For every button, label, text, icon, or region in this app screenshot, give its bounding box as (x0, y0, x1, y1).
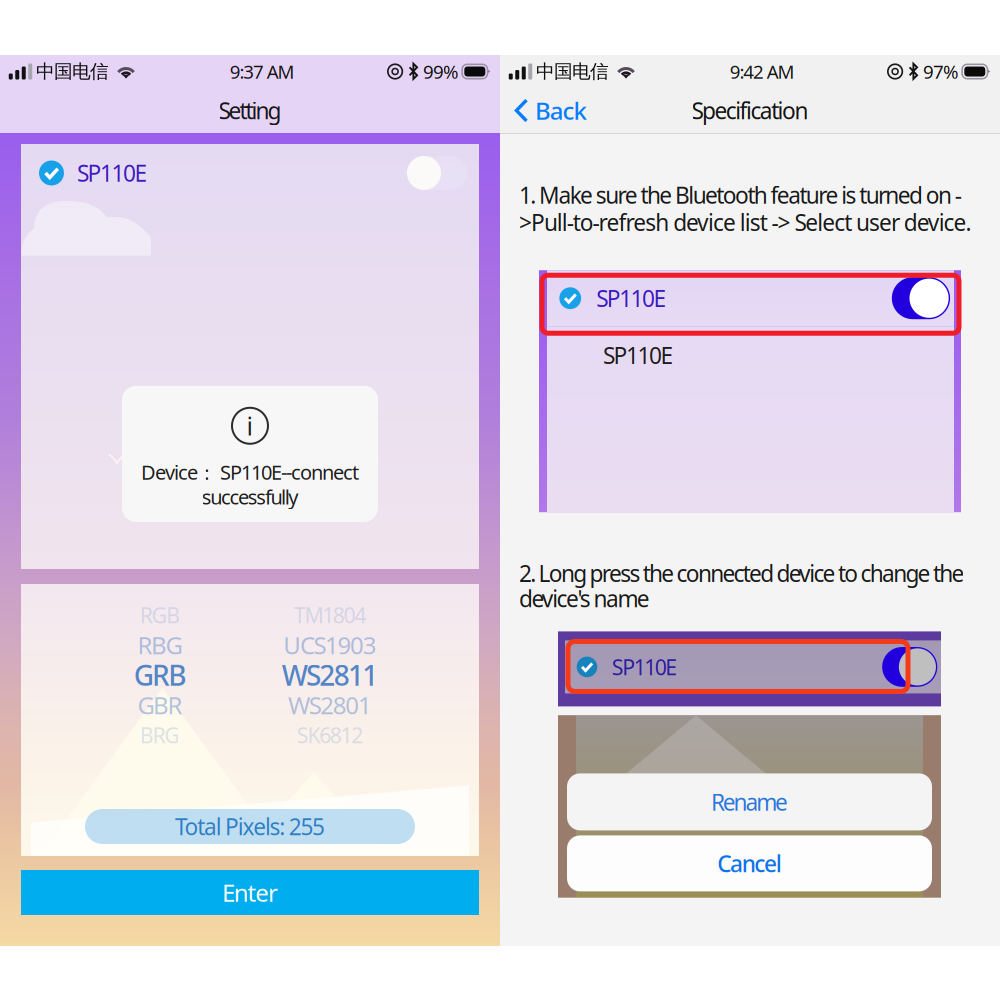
staticText: TM1804 (294, 601, 366, 629)
staticText: Setting (218, 95, 281, 125)
staticText: device's name (519, 583, 650, 613)
staticText: successfully (202, 483, 298, 510)
staticText: SP110E (77, 158, 147, 188)
staticText: BRG (140, 721, 180, 749)
staticText: 97% (923, 59, 959, 84)
button[interactable]: SP110E (21, 144, 479, 202)
staticText: RBG (137, 629, 182, 661)
staticText: Specification (692, 95, 808, 125)
button[interactable]: Cancel (558, 835, 941, 891)
staticText: WS2801 (288, 689, 372, 721)
staticText: 中国电信 (536, 60, 609, 83)
staticText: i (246, 409, 253, 443)
staticText: SP110E (603, 340, 673, 370)
staticText: SK6812 (297, 721, 363, 749)
button[interactable]: Total Pixels: 255 (21, 809, 479, 844)
staticText: SP110E (596, 283, 666, 313)
staticText: 2. Long press the connected device to ch… (519, 558, 964, 588)
staticText: 9:37 AM (230, 59, 294, 84)
staticText: Back (535, 95, 586, 126)
staticText: >Pull-to-refresh device list -> Select u… (519, 207, 971, 237)
staticText: 中国电信 (36, 60, 109, 83)
staticText: Total Pixels: 255 (175, 811, 325, 841)
staticText: Cancel (717, 848, 782, 878)
staticText: GBR (137, 689, 182, 721)
staticText: UCS1903 (283, 629, 377, 661)
staticText: GRB (134, 656, 186, 694)
staticText: WS2811 (282, 656, 378, 694)
staticText: Rename (711, 787, 788, 817)
button[interactable]: Enter (0, 870, 500, 915)
staticText: 1. Make sure the Bluetooth feature is tu… (519, 180, 962, 210)
staticText: SP110E (612, 653, 677, 681)
button[interactable]: Rename (558, 773, 941, 830)
button[interactable]: Back (500, 88, 600, 133)
staticText: Device： SP110E--connect (141, 459, 359, 485)
staticText: RGB (140, 601, 180, 629)
staticText: 9:42 AM (730, 59, 794, 84)
staticText: Enter (222, 877, 278, 908)
staticText: 99% (423, 59, 459, 84)
